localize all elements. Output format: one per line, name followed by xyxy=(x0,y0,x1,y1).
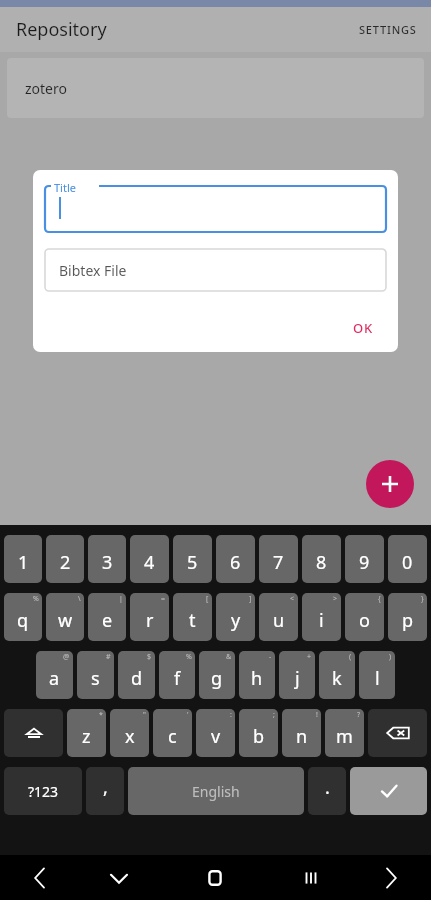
staticText: d xyxy=(131,666,143,691)
button[interactable]: 3 xyxy=(88,535,126,583)
staticText: English xyxy=(192,782,240,801)
staticText: a xyxy=(49,666,60,691)
staticText: 0 xyxy=(402,550,413,575)
staticText: & xyxy=(226,652,232,662)
staticText: - xyxy=(269,652,272,662)
button[interactable]: 0 xyxy=(388,535,427,583)
staticText: % xyxy=(186,652,192,662)
staticText: t xyxy=(189,608,196,633)
button[interactable]: OK xyxy=(343,312,384,344)
button[interactable]: | xyxy=(88,593,126,641)
staticText: { xyxy=(378,594,381,604)
button[interactable]: 2 xyxy=(46,535,84,583)
button[interactable]: % xyxy=(4,593,42,641)
button[interactable]: Bibtex File xyxy=(45,249,386,291)
staticText: ?123 xyxy=(28,782,59,801)
button[interactable]: Backspace xyxy=(368,709,427,757)
button[interactable]: Back xyxy=(0,855,79,900)
button[interactable]: 6 xyxy=(216,535,255,583)
staticText: ? xyxy=(357,710,361,720)
staticText: 5 xyxy=(187,550,198,575)
button[interactable]: Forward xyxy=(351,855,431,900)
button[interactable]: \ xyxy=(46,593,84,641)
staticText: s xyxy=(91,666,100,691)
staticText: \ xyxy=(78,594,81,604)
button[interactable]: " xyxy=(110,709,149,757)
button[interactable]: 5 xyxy=(173,535,212,583)
button[interactable]: < xyxy=(259,593,298,641)
staticText: z xyxy=(82,724,91,749)
staticText: k xyxy=(332,666,342,691)
button[interactable]: 8 xyxy=(302,535,341,583)
staticText: ] xyxy=(249,594,252,604)
staticText: u xyxy=(273,608,285,633)
staticText: ! xyxy=(316,710,318,720)
staticText: > xyxy=(333,594,338,604)
button[interactable]: SETTINGS xyxy=(345,12,431,47)
button[interactable]: > xyxy=(302,593,341,641)
button[interactable]: 9 xyxy=(345,535,384,583)
button[interactable]: . xyxy=(308,767,346,815)
staticText: ( xyxy=(349,652,352,662)
staticText: | xyxy=(119,594,123,604)
staticText: 1 xyxy=(18,550,29,575)
staticText: : xyxy=(230,710,232,720)
button[interactable]: * xyxy=(67,709,106,757)
button[interactable]: ) xyxy=(359,651,395,699)
staticText: v xyxy=(211,724,221,749)
staticText: e xyxy=(102,608,113,633)
staticText: SETTINGS xyxy=(359,22,417,37)
staticText: 3 xyxy=(102,550,113,575)
button[interactable]: Home xyxy=(159,855,271,900)
button[interactable]: = xyxy=(130,593,169,641)
staticText: = xyxy=(161,594,166,604)
button[interactable]: { xyxy=(345,593,384,641)
staticText: ; xyxy=(273,710,275,720)
button[interactable]: Enter xyxy=(350,767,427,815)
staticText: w xyxy=(58,608,73,633)
staticText: Repository xyxy=(16,17,107,42)
staticText: # xyxy=(106,652,111,662)
staticText: 8 xyxy=(316,550,327,575)
button[interactable]: ; xyxy=(239,709,278,757)
button[interactable]: 4 xyxy=(130,535,169,583)
staticText: , xyxy=(103,775,108,800)
button[interactable]: # xyxy=(77,651,114,699)
button[interactable]: , xyxy=(86,767,124,815)
button[interactable]: % xyxy=(159,651,195,699)
button[interactable]: : xyxy=(196,709,235,757)
staticText: r xyxy=(146,608,154,633)
staticText: ' xyxy=(187,710,189,720)
button[interactable]: - xyxy=(239,651,275,699)
button[interactable]: Shift xyxy=(4,709,63,757)
button[interactable]: ] xyxy=(216,593,255,641)
button[interactable]: Recents xyxy=(271,855,351,900)
button[interactable]: + xyxy=(279,651,315,699)
button[interactable]: Add xyxy=(366,460,414,508)
staticText: o xyxy=(359,608,370,633)
button[interactable]: ? xyxy=(325,709,364,757)
staticText: 4 xyxy=(144,550,155,575)
button[interactable]: Hide keyboard xyxy=(79,855,159,900)
button[interactable]: ' xyxy=(153,709,192,757)
button[interactable]: English xyxy=(128,767,304,815)
staticText: p xyxy=(402,608,414,633)
staticText: 9 xyxy=(359,550,370,575)
button[interactable]: & xyxy=(199,651,235,699)
button[interactable]: [ xyxy=(173,593,212,641)
button[interactable]: ! xyxy=(282,709,321,757)
button[interactable]: ?123 xyxy=(4,767,82,815)
staticText: 7 xyxy=(273,550,284,575)
staticText: $ xyxy=(147,652,152,662)
button[interactable]: 1 xyxy=(4,535,42,583)
button[interactable]: } xyxy=(388,593,427,641)
button[interactable]: $ xyxy=(118,651,155,699)
button[interactable]: @ xyxy=(36,651,73,699)
button[interactable]: 7 xyxy=(259,535,298,583)
staticText: 6 xyxy=(230,550,241,575)
button[interactable]: ( xyxy=(319,651,355,699)
button[interactable]: zotero xyxy=(7,58,424,118)
staticText: " xyxy=(143,710,146,720)
staticText: j xyxy=(295,666,300,691)
staticText: < xyxy=(290,594,295,604)
